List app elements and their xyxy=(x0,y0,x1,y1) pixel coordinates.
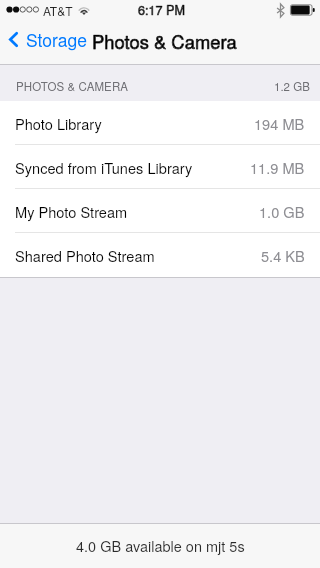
staticText: 11.9 MB xyxy=(250,157,305,178)
staticText: 4.0 GB available on mjt 5s xyxy=(76,535,245,556)
staticText: Photo Library xyxy=(15,113,102,134)
staticText: 6:17 PM xyxy=(138,1,185,19)
staticText: AT&T xyxy=(43,2,73,19)
staticText: 1.0 GB xyxy=(259,201,305,222)
button[interactable]: Shared Photo Stream xyxy=(0,233,320,277)
staticText: Photos & Camera xyxy=(92,28,237,54)
staticText: 6:17 PM xyxy=(138,1,185,19)
staticText: Shared Photo Stream xyxy=(15,245,155,266)
staticText: 1.2 GB xyxy=(274,78,310,94)
staticText: Synced from iTunes Library xyxy=(15,157,193,178)
staticText: My Photo Stream xyxy=(15,201,128,222)
staticText: Photos & Camera xyxy=(92,28,237,54)
button[interactable]: Storage xyxy=(0,22,95,57)
staticText: 194 MB xyxy=(254,113,305,134)
button[interactable]: My Photo Stream xyxy=(0,189,320,233)
staticText: 5.4 KB xyxy=(261,245,305,266)
staticText: PHOTOS & CAMERA xyxy=(16,78,129,94)
staticText: Storage xyxy=(26,27,87,52)
button[interactable]: Photo Library xyxy=(0,101,320,145)
button[interactable]: Synced from iTunes Library xyxy=(0,145,320,189)
